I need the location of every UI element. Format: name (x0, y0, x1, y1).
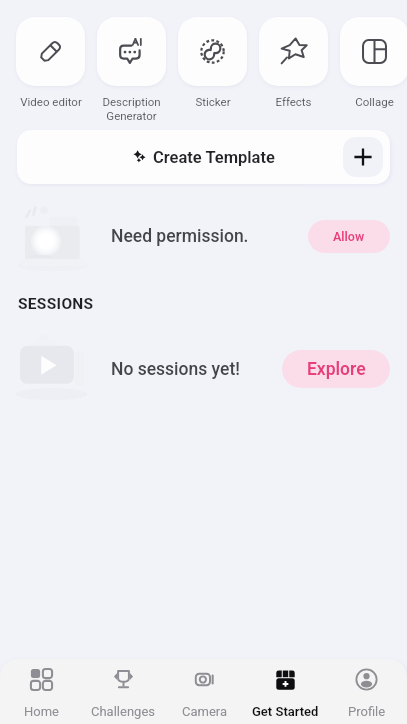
staticText: Create Template (153, 148, 275, 167)
button[interactable]: Collage (340, 17, 407, 108)
staticText: Description Generator (102, 95, 161, 123)
button[interactable]: Sticker (178, 17, 247, 108)
button[interactable]: Challenges (82, 659, 164, 724)
staticText: Explore (307, 359, 366, 380)
staticText: Collage (355, 95, 394, 108)
button[interactable]: Need permission. (0, 198, 407, 274)
button[interactable]: Add template (343, 137, 383, 177)
staticText: Profile (348, 704, 386, 719)
button[interactable]: Description Generator (97, 17, 166, 123)
staticText: Home (24, 704, 59, 719)
staticText: Challenges (91, 704, 155, 719)
staticText: Effects (275, 95, 312, 108)
staticText: Camera (182, 704, 228, 719)
staticText: Need permission. (111, 226, 249, 247)
staticText: No sessions yet! (111, 359, 240, 380)
button[interactable]: Camera (164, 659, 245, 724)
button[interactable]: Effects (259, 17, 328, 108)
button[interactable]: Video editor (16, 17, 85, 108)
button[interactable]: Explore (282, 350, 390, 388)
button[interactable]: Create Template (17, 130, 390, 184)
staticText: Get Started (252, 704, 319, 719)
button[interactable]: No sessions yet! (0, 331, 407, 407)
staticText: Allow (333, 229, 365, 244)
button[interactable]: Get Started (245, 659, 326, 724)
staticText: SESSIONS (18, 295, 94, 313)
button[interactable]: Allow (308, 220, 390, 253)
button[interactable]: Profile (326, 659, 407, 724)
staticText: Video editor (20, 95, 82, 108)
staticText: Sticker (195, 95, 231, 108)
button[interactable]: Home (0, 659, 82, 724)
